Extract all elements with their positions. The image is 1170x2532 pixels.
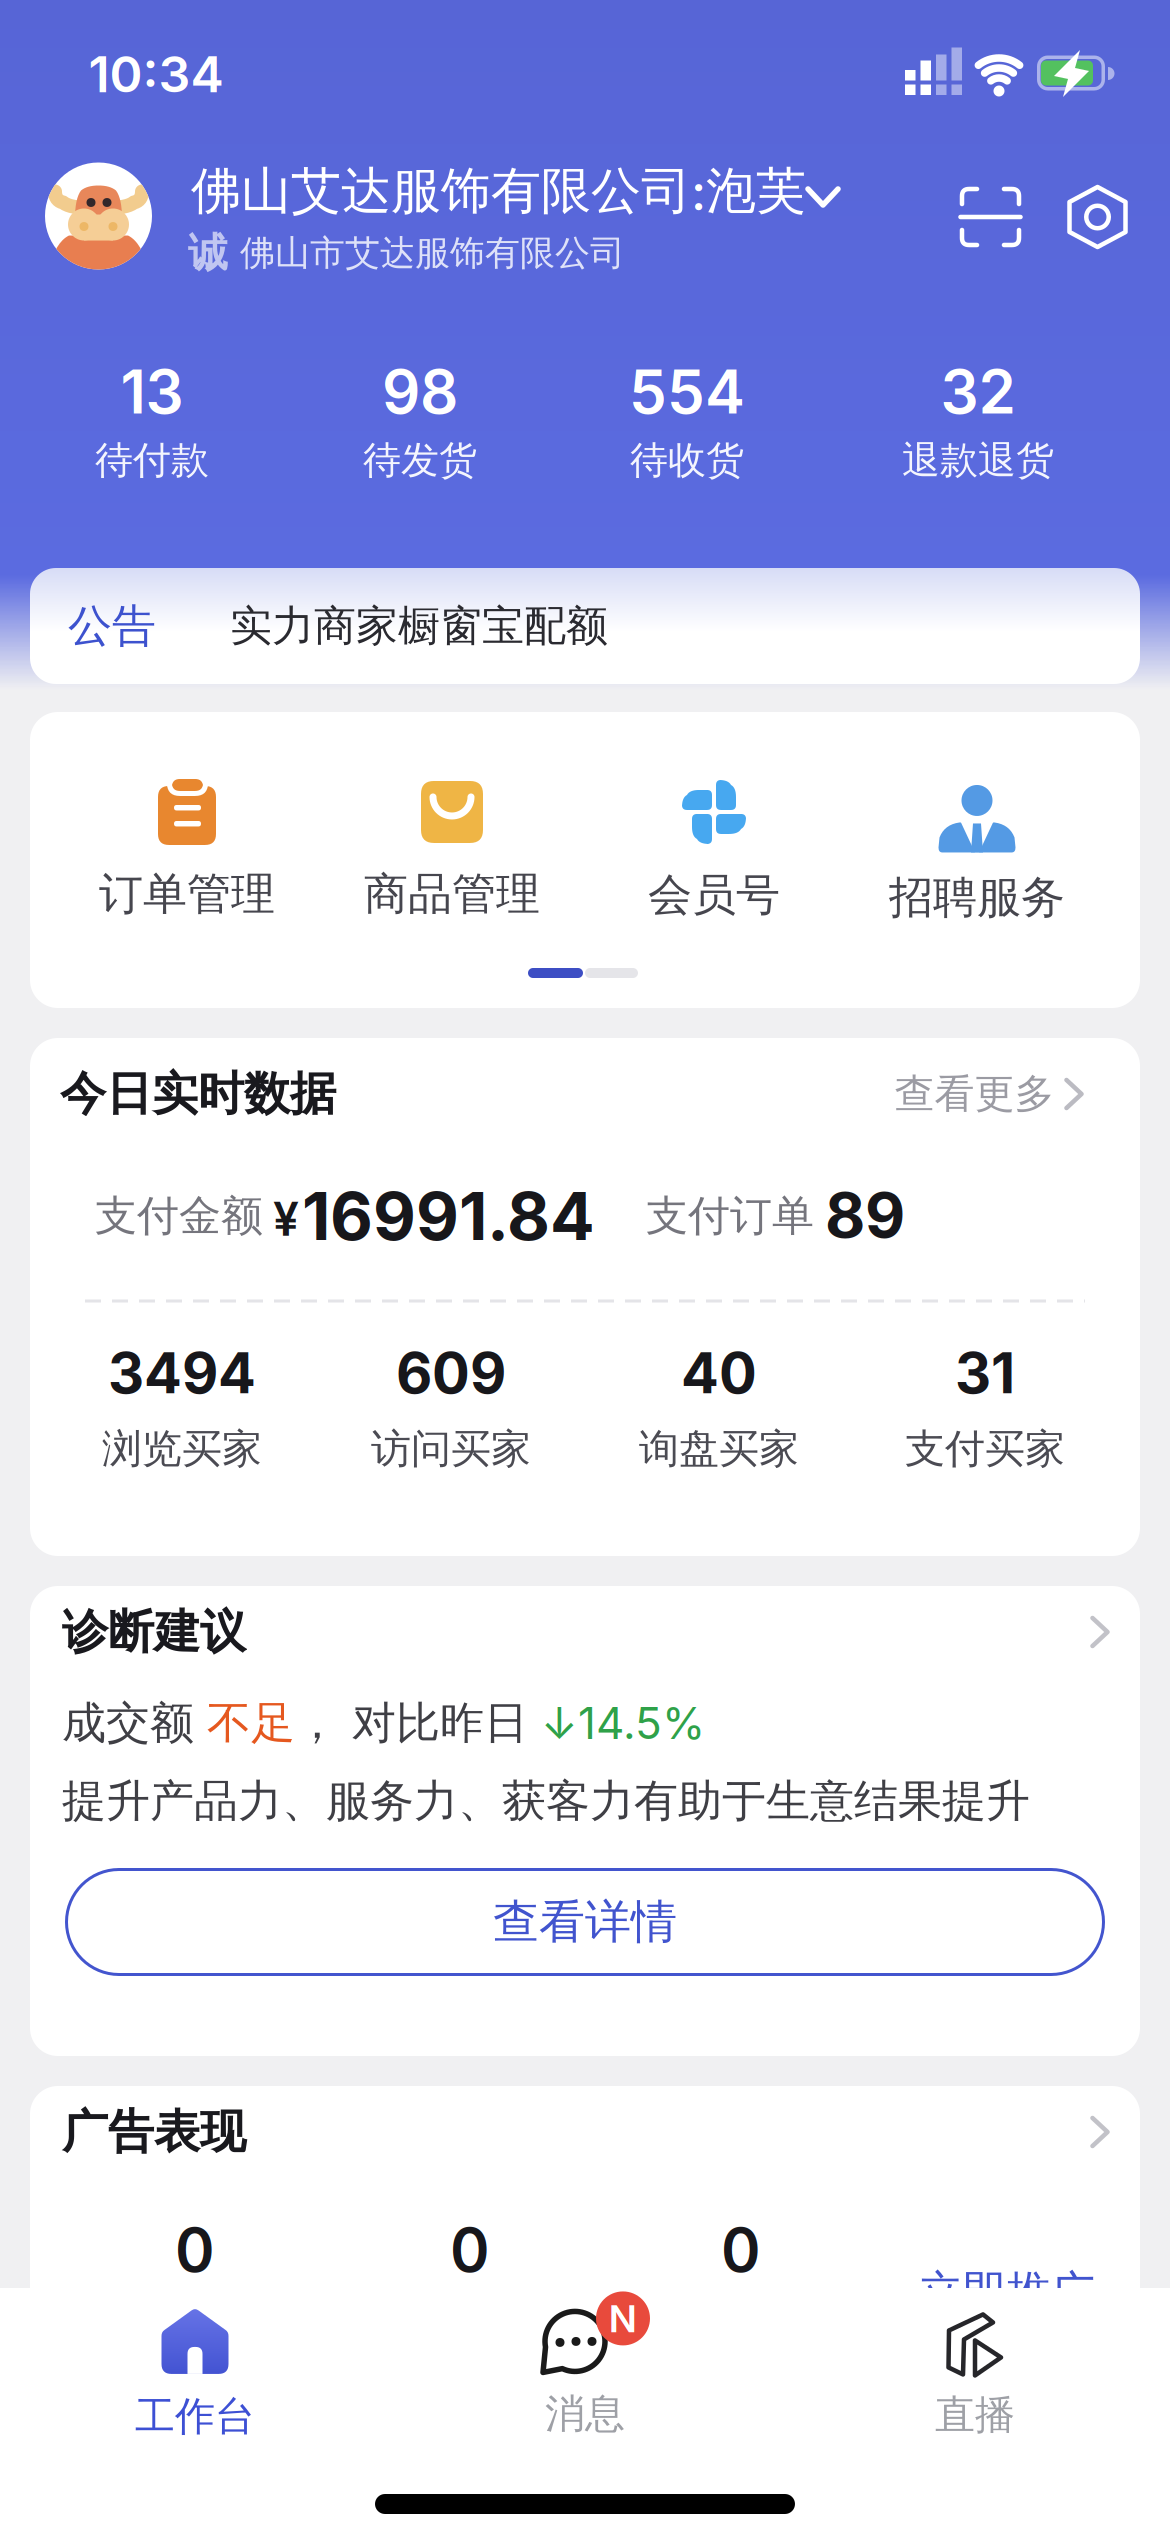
staticText: 会员号 — [648, 868, 780, 922]
staticText: 订单管理 — [99, 867, 275, 921]
staticText: 31 — [955, 1340, 1015, 1406]
button[interactable]: 查看更多 — [868, 1059, 1108, 1129]
staticText: 访问买家 — [371, 1424, 531, 1473]
button[interactable]: 工作台 — [45, 2300, 345, 2450]
staticText: 查看更多 — [894, 1069, 1054, 1118]
staticText: 不足 — [207, 1696, 295, 1750]
button[interactable]: N — [435, 2297, 735, 2447]
button[interactable]: 会员号 — [589, 771, 839, 931]
staticText: ， 对比昨日 — [295, 1696, 541, 1750]
button[interactable]: 32 — [848, 350, 1108, 490]
staticText: 10:34 — [88, 44, 223, 103]
staticText: 商品管理 — [364, 867, 540, 921]
button[interactable]: 查看详情 — [65, 1868, 1105, 1976]
staticText: 98 — [382, 356, 458, 427]
staticText: 32 — [940, 356, 1015, 427]
button[interactable]: 订单管理 — [62, 771, 312, 931]
button[interactable]: 554 — [557, 350, 817, 490]
staticText: 查看详情 — [493, 1894, 677, 1950]
staticText: 成交额 — [62, 1696, 207, 1750]
staticText: 40 — [681, 1340, 757, 1406]
staticText: N — [609, 2296, 637, 2341]
staticText: 待付款 — [95, 437, 209, 484]
button[interactable]: 直播 — [825, 2299, 1125, 2449]
staticText: 今日实时数据 — [60, 1066, 336, 1122]
staticText: 退款退货 — [902, 437, 1054, 484]
staticText: 89 — [825, 1178, 905, 1251]
staticText: 待发货 — [363, 437, 477, 484]
staticText: 招聘服务 — [889, 870, 1065, 924]
button[interactable]: 诊断建议 — [62, 1604, 1108, 1660]
button[interactable]: 账号头像 — [45, 162, 152, 269]
staticText: 工作台 — [135, 2392, 255, 2441]
staticText: 消息 — [545, 2389, 625, 2438]
staticText: 609 — [396, 1340, 506, 1406]
staticText: 广告表现 — [62, 2104, 246, 2160]
staticText: 支付买家 — [905, 1424, 1065, 1473]
button[interactable]: 扫一扫 — [952, 179, 1028, 255]
button[interactable]: 13 — [22, 350, 282, 490]
staticText: 支付订单 — [646, 1190, 814, 1242]
staticText: 0 — [721, 2215, 761, 2285]
staticText: 0 — [450, 2215, 490, 2285]
staticText: 待收货 — [630, 437, 744, 484]
staticText: 0 — [175, 2215, 215, 2285]
staticText: 554 — [629, 356, 745, 427]
staticText: 佛山市艾达服饰有限公司 — [240, 231, 625, 274]
staticText: 询盘买家 — [639, 1424, 799, 1473]
staticText: 实力商家橱窗宝配额 — [230, 600, 608, 652]
button[interactable]: 佛山艾达服饰有限公司:泡芙 — [191, 159, 891, 289]
button[interactable]: 招聘服务 — [852, 763, 1102, 933]
staticText: 公告 — [68, 599, 156, 653]
button[interactable]: 设置 — [1059, 179, 1135, 255]
staticText: ↓14.5% — [541, 1697, 705, 1749]
staticText: ¥ — [273, 1192, 299, 1246]
button[interactable]: 公告 — [30, 568, 1140, 684]
staticText: 浏览买家 — [102, 1424, 262, 1473]
staticText: 3494 — [108, 1340, 256, 1406]
button[interactable]: 广告表现 — [62, 2104, 1108, 2160]
staticText: 诊断建议 — [62, 1604, 246, 1660]
staticText: 直播 — [935, 2390, 1015, 2439]
staticText: 13 — [120, 356, 183, 427]
staticText: 提升产品力、服务力、获客力有助于生意结果提升 — [62, 1774, 1030, 1828]
button[interactable]: 立即推广 — [907, 2262, 1107, 2322]
staticText: 佛山艾达服饰有限公司:泡芙 — [191, 160, 806, 222]
staticText: 立即推广 — [919, 2265, 1095, 2319]
staticText: 支付金额 — [95, 1190, 263, 1242]
button[interactable]: 98 — [290, 350, 550, 490]
staticText: 16991.84 — [302, 1177, 595, 1255]
staticText: 诚 — [188, 228, 228, 277]
button[interactable]: 商品管理 — [327, 771, 577, 931]
